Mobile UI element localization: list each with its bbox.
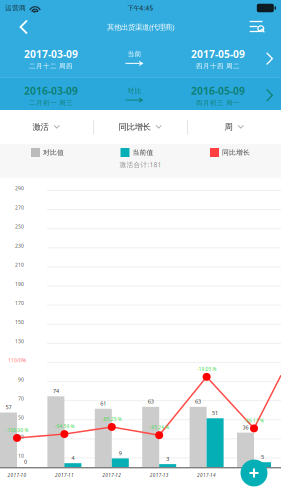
staticText: 57 [5,404,11,411]
staticText: 激活合计:181 [119,160,161,169]
button[interactable]: 周 [188,110,281,144]
staticText: -94.59 % [54,423,74,429]
staticText: 2016-03-09 [24,84,78,98]
staticText: 对比值 [43,148,64,157]
staticText: 二月初一 周三 [29,99,73,107]
staticText: 2017-11 [55,472,74,478]
staticText: 0 [24,458,27,465]
staticText: 2017-10 [7,472,26,478]
staticText: 2017-03-09 [24,47,78,61]
staticText: 70 [18,395,24,402]
staticText: 下午4:45 [127,4,153,12]
staticText: -19.05 % [197,366,217,372]
staticText: 四月初三 周一 [196,99,240,107]
staticText: 周 [224,122,232,132]
button[interactable]: 2016-03-09 [0,78,281,110]
staticText: 对比 [127,86,141,95]
button[interactable]: 搜索 [239,16,275,38]
staticText: 当前值 [132,148,153,157]
staticText: 2017-14 [197,472,216,478]
staticText: 36 [242,424,248,431]
button[interactable]: 激活 [0,110,93,144]
staticText: 5 [261,453,264,461]
staticText: -86.11 % [244,417,264,424]
staticText: 2017-12 [102,472,121,478]
staticText: 2017-15 [244,472,263,478]
staticText: 30 [18,433,24,440]
staticText: 四月十四 周二 [196,62,240,70]
staticText: 51 [212,409,218,417]
button[interactable]: 新增 [237,456,271,490]
staticText: 170 [15,300,24,306]
staticText: 激活 [32,122,48,132]
button[interactable]: 2017-03-09 [0,38,281,77]
staticText: 当前 [127,50,141,58]
staticText: 210 [15,261,24,268]
button[interactable]: 返回 [6,16,42,38]
staticText: 4 [71,454,74,462]
staticText: 270 [15,204,24,211]
staticText: 150 [15,319,24,325]
staticText: 50 [18,414,24,421]
staticText: 9 [119,449,122,457]
staticText: 10 [18,452,24,459]
staticText: 61 [100,400,106,407]
staticText: 同比增长 [118,122,150,132]
staticText: 2017-13 [150,472,169,478]
staticText: 2016-05-09 [191,84,245,98]
staticText: 二月十二 周四 [29,62,73,70]
staticText: -95.24 % [149,424,169,431]
staticText: 同比增长 [222,148,250,157]
staticText: 90 [18,376,24,383]
staticText: 74 [53,387,59,395]
staticText: 2017-05-09 [191,47,245,61]
staticText: 290 [15,185,24,192]
staticText: 130 [15,338,24,345]
staticText: -85.25 % [102,416,122,422]
staticText: 250 [15,223,24,230]
staticText: -100.00 % [5,427,28,433]
staticText: 63 [195,398,201,405]
staticText: 230 [15,242,24,249]
staticText: 110/0% [8,357,26,364]
staticText: 63 [148,398,154,405]
staticText: 3 [166,455,169,462]
staticText: 运营商 [5,4,26,12]
staticText: 190 [15,280,24,287]
button[interactable]: 同比增长 [94,110,187,144]
staticText: 其他出货渠道(代理商) [107,22,174,32]
